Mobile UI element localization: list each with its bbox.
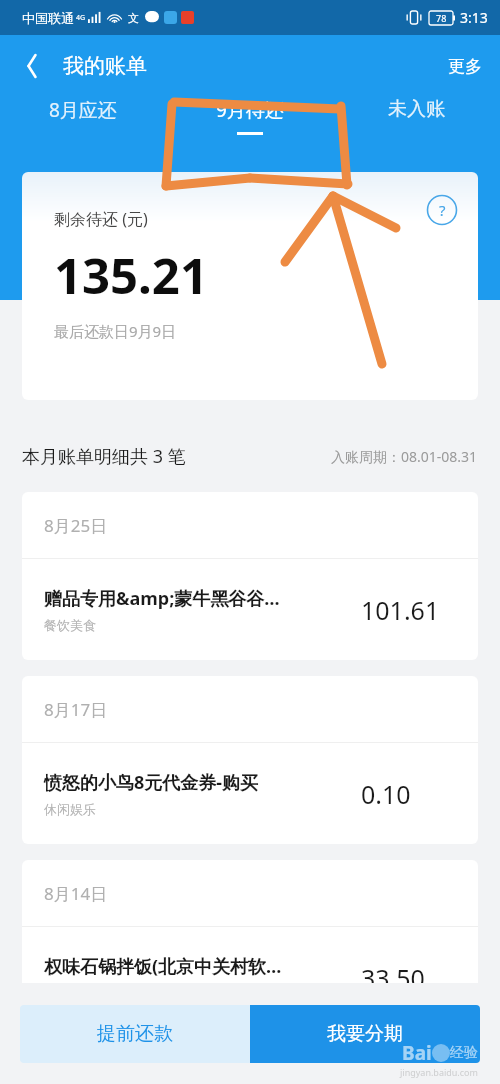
staticText: 餐饮美食 xyxy=(44,617,96,633)
staticText: 更多 xyxy=(448,56,482,77)
button[interactable]: 9月待还 xyxy=(166,97,333,135)
staticText: 经验 xyxy=(450,1044,478,1062)
button[interactable]: 剩余待还 (元) xyxy=(22,172,478,400)
staticText: 愤怒的小鸟8元代金券-购买 xyxy=(44,770,259,795)
staticText: 中国联通 xyxy=(22,10,74,26)
button[interactable]: 8月应还 xyxy=(0,97,166,135)
staticText: 33.50 xyxy=(361,961,456,995)
staticText: 休闲娱乐 xyxy=(44,801,96,817)
staticText: 剩余待还 (元) xyxy=(54,208,148,230)
staticText: 8月25日 xyxy=(44,514,108,537)
button[interactable]: 8月17日 xyxy=(22,676,478,844)
button[interactable]: 未入账 xyxy=(333,97,500,133)
staticText: 赠品专用&amp;蒙牛黑谷谷… xyxy=(44,586,280,611)
staticText: 8月应还 xyxy=(49,97,117,123)
button[interactable]: 8月25日 xyxy=(22,492,478,660)
staticText: Bai xyxy=(402,1040,432,1066)
button[interactable]: 8月14日 xyxy=(22,860,478,1028)
staticText: 最后还款日9月9日 xyxy=(54,321,177,341)
button[interactable]: 返回 xyxy=(10,44,54,88)
staticText: 本月账单明细共 3 笔 xyxy=(22,444,186,469)
button[interactable]: 帮助 xyxy=(426,194,458,226)
staticText: 8月17日 xyxy=(44,698,108,721)
button[interactable]: 我要分期 xyxy=(250,1005,480,1063)
staticText: 提前还款 xyxy=(97,1022,173,1046)
staticText: 0.10 xyxy=(361,777,456,811)
staticText: 文 xyxy=(128,11,139,25)
staticText: 我的账单 xyxy=(63,53,147,79)
staticText: jingyan.baidu.com xyxy=(400,1066,478,1078)
button[interactable]: 更多 xyxy=(430,46,500,87)
staticText: ? xyxy=(439,200,446,220)
staticText: 135.21 xyxy=(54,242,208,309)
staticText: 3:13 xyxy=(460,8,488,27)
staticText: 101.61 xyxy=(361,593,456,627)
staticText: 4G xyxy=(76,13,86,23)
button[interactable]: 提前还款 xyxy=(20,1005,250,1063)
staticText: 78 xyxy=(436,12,447,24)
staticText: 我要分期 xyxy=(327,1022,403,1046)
staticText: 入账周期：08.01-08.31 xyxy=(331,447,478,466)
staticText: 8月14日 xyxy=(44,882,108,905)
staticText: 9月待还 xyxy=(216,97,284,123)
staticText: 未入账 xyxy=(388,97,445,121)
staticText: 权味石锅拌饭(北京中关村软… xyxy=(44,954,282,979)
